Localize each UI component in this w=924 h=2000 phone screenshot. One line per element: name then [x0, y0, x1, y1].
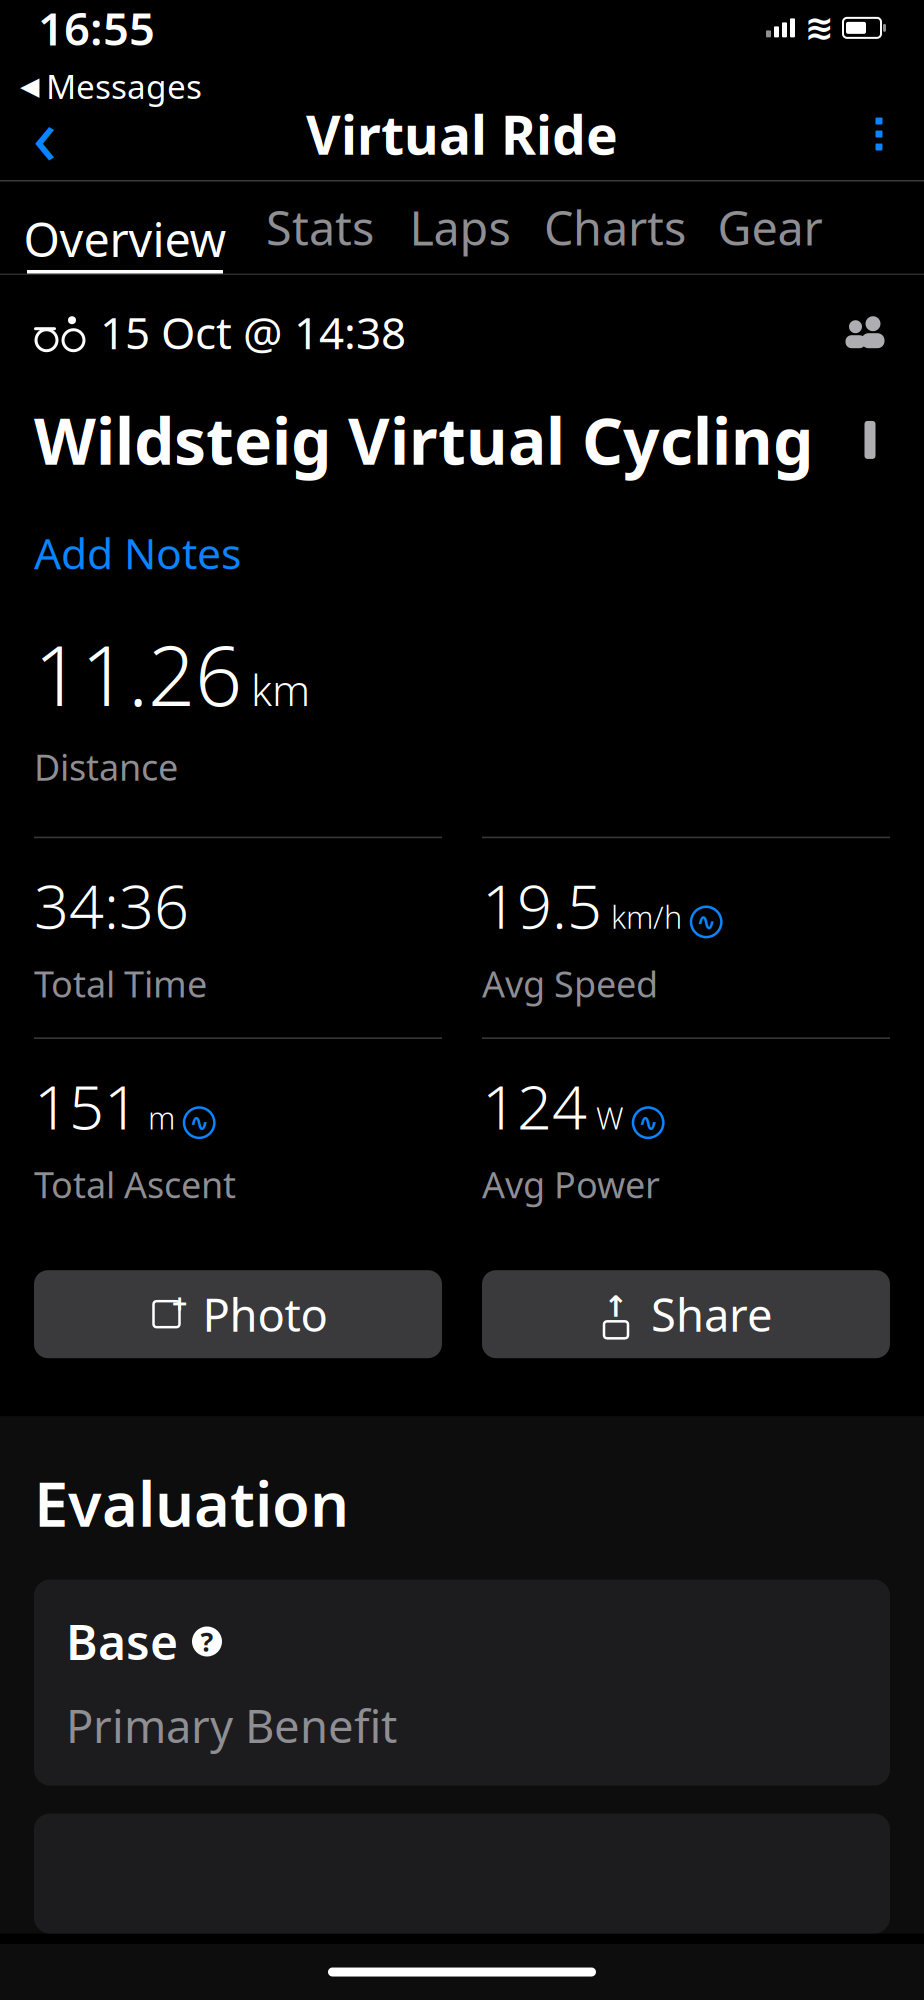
staticText: ∿	[189, 1109, 209, 1136]
staticText: Avg Speed	[482, 960, 658, 1007]
button[interactable]: Base	[34, 1580, 890, 1785]
button[interactable]: Edit title	[850, 418, 890, 462]
staticText: Virtual Ride	[306, 99, 618, 169]
staticText: Total Ascent	[34, 1160, 236, 1208]
staticText: km/h	[611, 896, 682, 937]
staticText: Share	[651, 1284, 773, 1344]
staticText: +	[172, 1285, 187, 1321]
staticText: Evaluation	[34, 1462, 349, 1544]
staticText: Overview	[23, 208, 226, 270]
staticText: Wildsteig Virtual Cycling	[34, 397, 813, 482]
staticText: ∿	[696, 908, 716, 935]
staticText: ?	[200, 1624, 213, 1659]
staticText: Laps	[409, 196, 510, 258]
staticText: km	[251, 661, 310, 718]
staticText: Total Time	[34, 960, 207, 1007]
button[interactable]: ↑	[482, 1270, 890, 1358]
staticText: ∿	[638, 1109, 658, 1136]
button[interactable]: Add Notes	[34, 524, 241, 581]
button[interactable]: Laps	[390, 181, 530, 273]
staticText: ‹	[32, 81, 57, 187]
staticText: m	[148, 1097, 175, 1138]
staticText: Gear	[717, 196, 822, 258]
staticText: W	[596, 1097, 624, 1138]
button[interactable]: Shared with	[840, 315, 890, 349]
button[interactable]: More options	[834, 91, 924, 177]
button[interactable]: Back	[0, 91, 90, 177]
staticText: 15 Oct @ 14:38	[100, 303, 406, 361]
staticText: Stats	[266, 196, 374, 258]
staticText: ◀	[20, 72, 39, 100]
staticText: 16:55	[38, 0, 155, 58]
staticText: 11.26	[34, 619, 242, 729]
staticText: Avg Power	[482, 1160, 660, 1208]
staticText: ≋	[804, 8, 833, 47]
staticText: Charts	[544, 196, 686, 258]
staticText: 34:36	[34, 864, 189, 946]
button[interactable]: Charts	[530, 181, 700, 273]
staticText: ↑	[603, 1290, 628, 1323]
staticText: Base	[66, 1610, 178, 1673]
button[interactable]: Gear	[700, 181, 840, 273]
staticText: Messages	[46, 64, 202, 108]
button[interactable]: Stats	[250, 181, 390, 273]
staticText: 19.5	[482, 864, 602, 946]
staticText: 124	[482, 1065, 587, 1146]
staticText: Distance	[34, 743, 178, 791]
button[interactable]: Overview	[0, 181, 250, 273]
staticText: Photo	[202, 1284, 327, 1344]
staticText: Primary Benefit	[66, 1695, 397, 1756]
button[interactable]: +	[34, 1270, 442, 1358]
staticText: Add Notes	[34, 524, 241, 581]
staticText: 151	[34, 1065, 139, 1146]
